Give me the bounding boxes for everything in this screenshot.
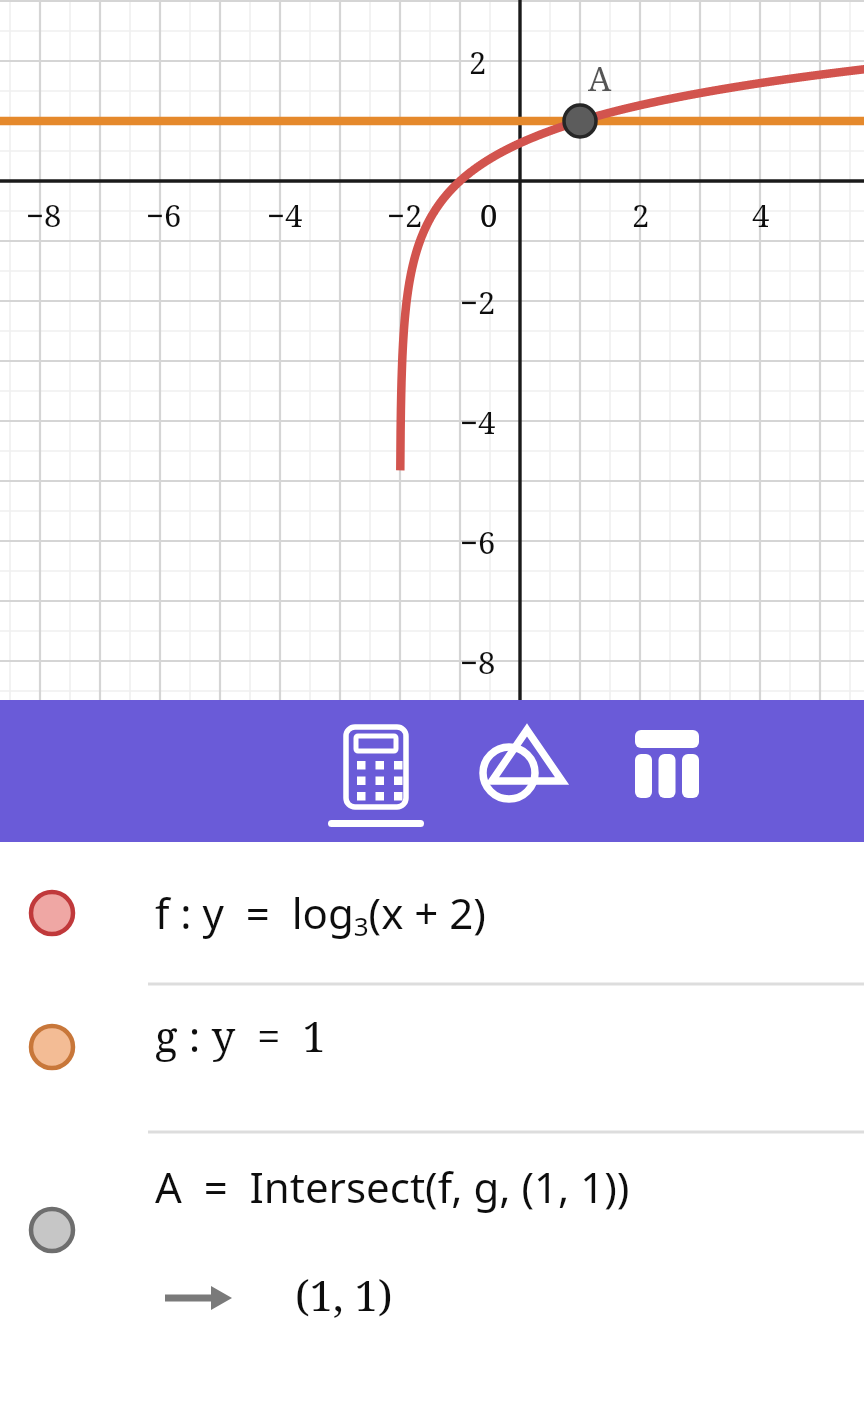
staticText: 2 (469, 41, 487, 83)
staticText: 4 (752, 194, 770, 236)
staticText: −2 (387, 194, 423, 236)
staticText: A (588, 56, 612, 101)
staticText: 2 (632, 194, 650, 236)
staticText: 0 (480, 194, 498, 236)
button[interactable]: Graphing Calculator (328, 700, 424, 842)
button[interactable]: −8 (0, 0, 864, 700)
button[interactable]: Table (619, 700, 715, 842)
button[interactable]: Geometry (474, 700, 570, 842)
staticText: g : y = 1 (155, 1007, 326, 1064)
staticText: −8 (26, 194, 62, 236)
staticText: −6 (146, 194, 182, 236)
staticText: −4 (267, 194, 303, 236)
staticText: (1, 1) (295, 1266, 393, 1323)
staticText: −6 (460, 521, 496, 563)
staticText: A = Intersect(f, g, (1, 1)) (155, 1158, 630, 1215)
staticText: −2 (460, 281, 496, 323)
staticText: −8 (460, 641, 496, 683)
staticText: 0 (480, 194, 498, 236)
staticText: f : y = log3(x + 2) (155, 884, 486, 943)
button[interactable]: g : y = 1 (0, 985, 864, 1133)
staticText: −4 (460, 401, 496, 443)
button[interactable]: f : y = log3(x + 2) (0, 842, 864, 985)
button[interactable]: A = Intersect(f, g, (1, 1)) (0, 1133, 864, 1333)
